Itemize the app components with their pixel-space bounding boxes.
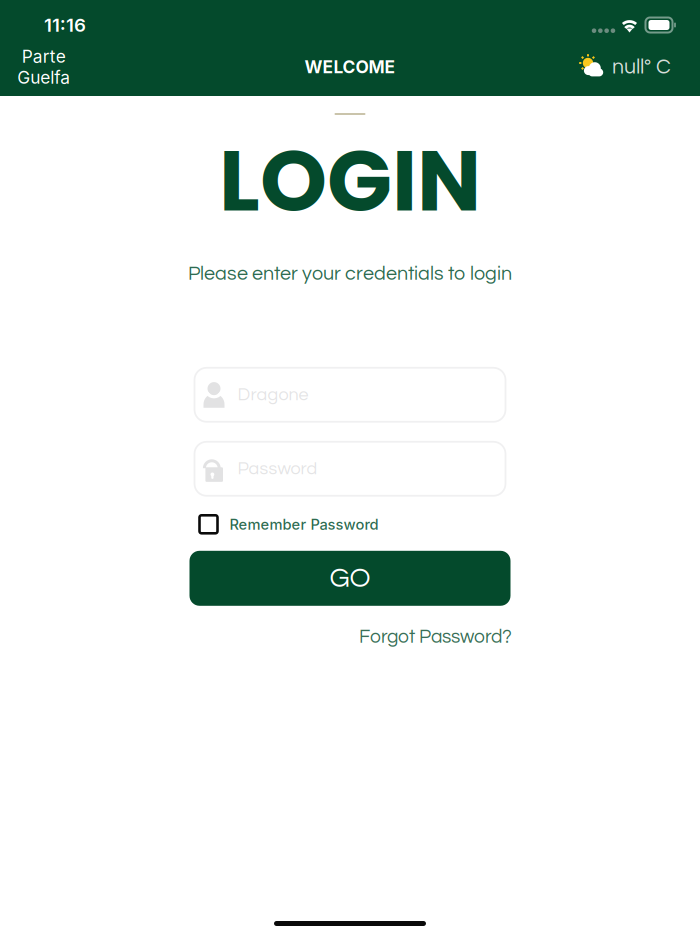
staticText: WELCOME [304, 56, 395, 77]
staticText: null° C [612, 56, 671, 78]
staticText: Please enter your credentials to login [188, 263, 512, 284]
staticText: Password [237, 459, 317, 478]
button[interactable]: Forgot Password? [188, 626, 512, 648]
staticText: LOGIN [219, 121, 481, 240]
staticText: Dragone [237, 385, 308, 404]
staticText: Remember Password [229, 515, 378, 533]
staticText: GO [329, 564, 370, 593]
staticText: Parte Guelfa [17, 46, 70, 88]
button[interactable]: GO [189, 551, 510, 606]
staticText: 11:16 [44, 14, 86, 36]
button[interactable]: Remember Password [193, 514, 506, 535]
staticText: Forgot Password? [359, 627, 512, 647]
